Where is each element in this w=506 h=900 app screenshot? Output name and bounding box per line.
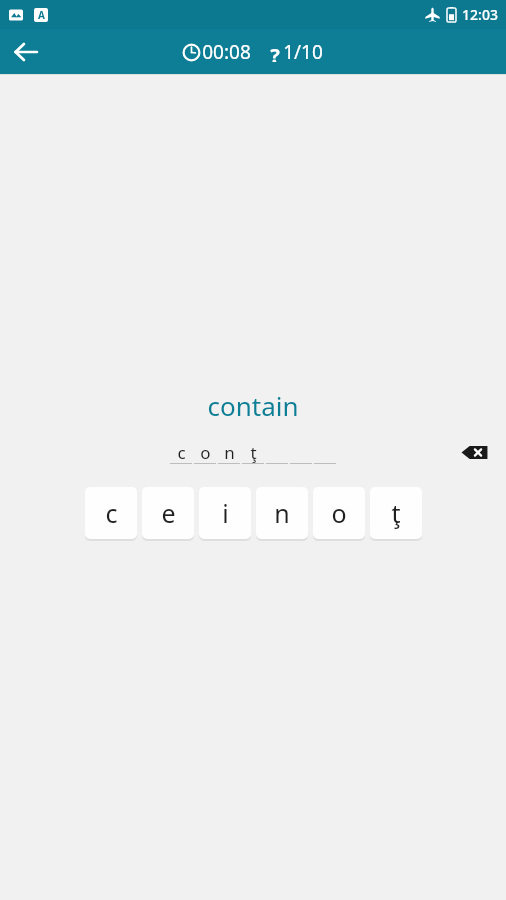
- staticText: 00:08: [202, 39, 251, 65]
- staticText: 1/10: [283, 39, 323, 65]
- staticText: ţ: [250, 441, 257, 463]
- staticText: c: [177, 441, 186, 463]
- staticText: n: [224, 441, 235, 463]
- button[interactable]: n: [256, 487, 308, 539]
- staticText: n: [274, 496, 290, 530]
- staticText: contain: [207, 388, 299, 423]
- staticText: A: [38, 8, 45, 22]
- button[interactable]: o: [313, 487, 365, 539]
- staticText: o: [331, 496, 347, 530]
- button[interactable]: Back: [4, 30, 48, 74]
- button[interactable]: Backspace: [455, 433, 493, 471]
- staticText: i: [222, 496, 229, 530]
- staticText: ţ: [391, 496, 401, 530]
- staticText: c: [105, 496, 118, 530]
- button[interactable]: c: [85, 487, 137, 539]
- staticText: e: [161, 496, 176, 530]
- button[interactable]: e: [142, 487, 194, 539]
- button[interactable]: i: [199, 487, 251, 539]
- button[interactable]: ţ: [370, 487, 422, 539]
- staticText: 12:03: [462, 5, 498, 24]
- staticText: ?: [270, 42, 280, 62]
- staticText: o: [200, 441, 211, 463]
